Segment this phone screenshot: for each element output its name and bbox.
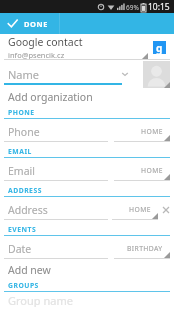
staticText: PHONE <box>8 108 35 117</box>
button[interactable]: Name <box>4 63 122 85</box>
staticText: g <box>156 41 163 54</box>
button[interactable]: Add new <box>0 261 174 278</box>
button[interactable]: DONE <box>0 13 174 34</box>
staticText: Phone <box>8 125 40 139</box>
staticText: 10:15 <box>148 1 170 13</box>
staticText: Add new <box>8 263 51 277</box>
button[interactable]: Date <box>4 239 108 259</box>
staticText: HOME <box>141 127 163 136</box>
staticText: Email <box>8 164 35 178</box>
button[interactable]: Phone <box>4 122 108 142</box>
staticText: Google contact <box>8 35 83 49</box>
button[interactable]: HOME <box>114 122 170 142</box>
button[interactable]: BIRTHDAY <box>114 239 170 259</box>
staticText: Name <box>8 67 40 82</box>
button[interactable]: HOME <box>114 161 170 181</box>
staticText: Address <box>8 203 48 217</box>
staticText: ADDRESS <box>8 186 42 195</box>
button[interactable]: Google contact <box>0 34 174 60</box>
button[interactable]: Contact photo <box>143 61 170 88</box>
staticText: Add organization <box>8 90 93 104</box>
staticText: HOME <box>141 166 163 175</box>
button[interactable]: Add organization <box>0 88 174 105</box>
staticText: 69% <box>126 3 139 12</box>
staticText: BIRTHDAY <box>127 244 163 253</box>
button[interactable]: Email <box>4 161 108 181</box>
button[interactable]: HOME <box>112 200 158 220</box>
staticText: Date <box>8 242 32 256</box>
staticText: GROUPS <box>8 281 39 290</box>
button[interactable]: Address <box>4 200 108 220</box>
staticText: EVENTS <box>8 225 37 234</box>
staticText: Group name <box>8 293 73 307</box>
staticText: HOME <box>129 205 151 214</box>
staticText: EMAIL <box>8 147 32 156</box>
button[interactable]: Expand name <box>121 70 129 78</box>
staticText: DONE <box>24 19 49 29</box>
button[interactable]: Delete Address <box>161 205 171 215</box>
staticText: info@psencik.cz <box>8 50 65 60</box>
